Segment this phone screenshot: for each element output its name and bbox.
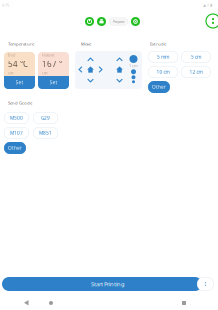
staticText: Bed xyxy=(8,52,15,58)
button[interactable]: Settings xyxy=(131,17,140,26)
button[interactable]: Prepare xyxy=(109,17,128,25)
button[interactable]: Print file xyxy=(97,17,106,26)
button[interactable]: Connect printer xyxy=(85,17,94,26)
button[interactable]: Start Printing xyxy=(2,277,202,291)
button[interactable]: Other xyxy=(148,81,170,93)
button[interactable]: More print options xyxy=(197,277,214,291)
button[interactable]: 1 mm step xyxy=(131,69,136,74)
staticText: ▲ ıl ▮ xyxy=(203,2,212,8)
staticText: M851 xyxy=(39,130,52,136)
staticText: Hotend xyxy=(42,52,54,58)
button[interactable]: More options xyxy=(206,14,218,28)
staticText: 5 mm xyxy=(157,54,169,60)
button[interactable]: Set xyxy=(4,76,35,89)
button[interactable]: M107 xyxy=(4,127,29,139)
button[interactable]: Back xyxy=(24,300,29,306)
button[interactable]: 12 cm xyxy=(181,66,211,78)
staticText: Set xyxy=(15,79,23,86)
button[interactable]: 1 cm step xyxy=(129,55,137,63)
staticText: 167 ° xyxy=(42,59,62,69)
staticText: Off xyxy=(42,70,48,76)
staticText: 5 cm xyxy=(191,54,201,60)
button[interactable]: 0.01 mm step xyxy=(132,80,135,83)
button[interactable]: 0.1 mm step xyxy=(131,75,135,79)
button[interactable]: M500 xyxy=(4,112,29,124)
button[interactable]: Home xyxy=(49,301,53,305)
staticText: Temperature xyxy=(8,41,34,47)
staticText: 1 cm xyxy=(129,63,138,68)
staticText: M500 xyxy=(10,115,23,121)
staticText: G29 xyxy=(41,115,50,121)
button[interactable]: 10 cm xyxy=(148,66,178,78)
staticText: Other xyxy=(152,84,166,90)
button[interactable]: 5 mm xyxy=(148,51,178,63)
staticText: 10 cm xyxy=(156,69,169,75)
staticText: Other xyxy=(8,145,22,151)
staticText: Prepare xyxy=(112,19,124,24)
staticText: Start Printing xyxy=(91,280,125,288)
staticText: 6:15 xyxy=(2,2,9,8)
staticText: Off xyxy=(8,70,14,76)
button[interactable]: 5 cm xyxy=(181,51,211,63)
button[interactable]: Recent apps xyxy=(182,301,186,305)
button[interactable]: G29 xyxy=(33,112,58,124)
staticText: Set xyxy=(49,79,57,86)
staticText: Move xyxy=(81,41,91,47)
button[interactable]: Other xyxy=(4,142,26,154)
staticText: Send Gcode xyxy=(8,100,32,106)
button[interactable]: Set xyxy=(38,76,69,89)
staticText: 54 °C xyxy=(8,59,28,69)
staticText: Extrude xyxy=(150,41,166,47)
button[interactable]: M851 xyxy=(33,127,58,139)
staticText: 12 cm xyxy=(189,69,202,75)
staticText: M107 xyxy=(10,130,23,136)
